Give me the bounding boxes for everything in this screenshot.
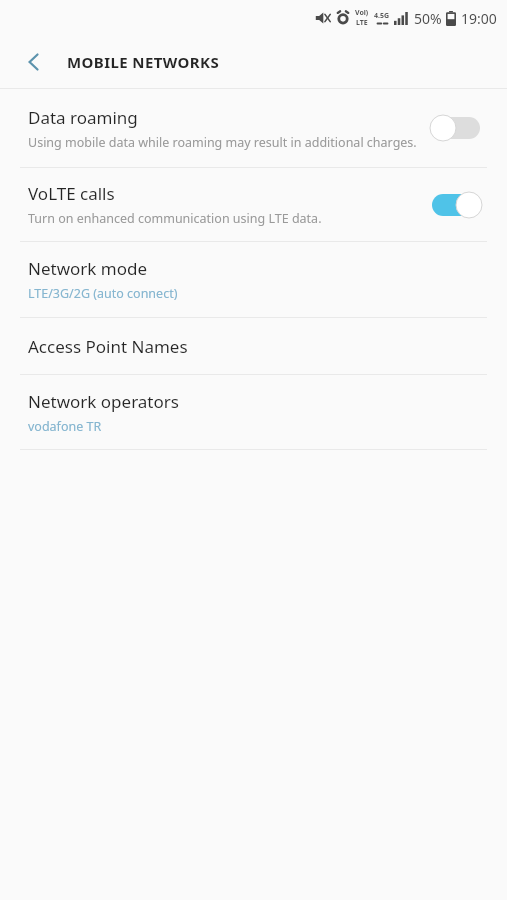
button[interactable]: Toggle off [429, 112, 483, 144]
staticText: LTE [356, 18, 368, 28]
staticText: Turn on enhanced communication using LTE… [28, 210, 322, 227]
button[interactable]: Network mode [0, 242, 507, 317]
staticText: Using mobile data while roaming may resu… [28, 134, 417, 151]
button[interactable]: Network operators [0, 375, 507, 449]
staticText: 50% [414, 9, 442, 28]
button[interactable]: Access Point Names [0, 318, 507, 374]
staticText: Data roaming [28, 106, 138, 129]
staticText: vodafone TR [28, 418, 102, 435]
staticText: Network operators [28, 390, 179, 413]
button[interactable]: VoLTE calls [0, 168, 507, 241]
button[interactable]: Toggle on [429, 189, 483, 221]
staticText: VoLTE calls [28, 182, 115, 205]
button[interactable]: Data roaming [0, 89, 507, 167]
staticText: LTE/3G/2G (auto connect) [28, 285, 178, 302]
staticText: Vol) [355, 8, 369, 18]
staticText: Access Point Names [28, 335, 188, 358]
staticText: MOBILE NETWORKS [67, 52, 220, 72]
button[interactable]: Back [14, 42, 54, 82]
staticText: 4.5G [374, 11, 390, 21]
staticText: Network mode [28, 257, 148, 280]
staticText: 19:00 [461, 9, 497, 28]
